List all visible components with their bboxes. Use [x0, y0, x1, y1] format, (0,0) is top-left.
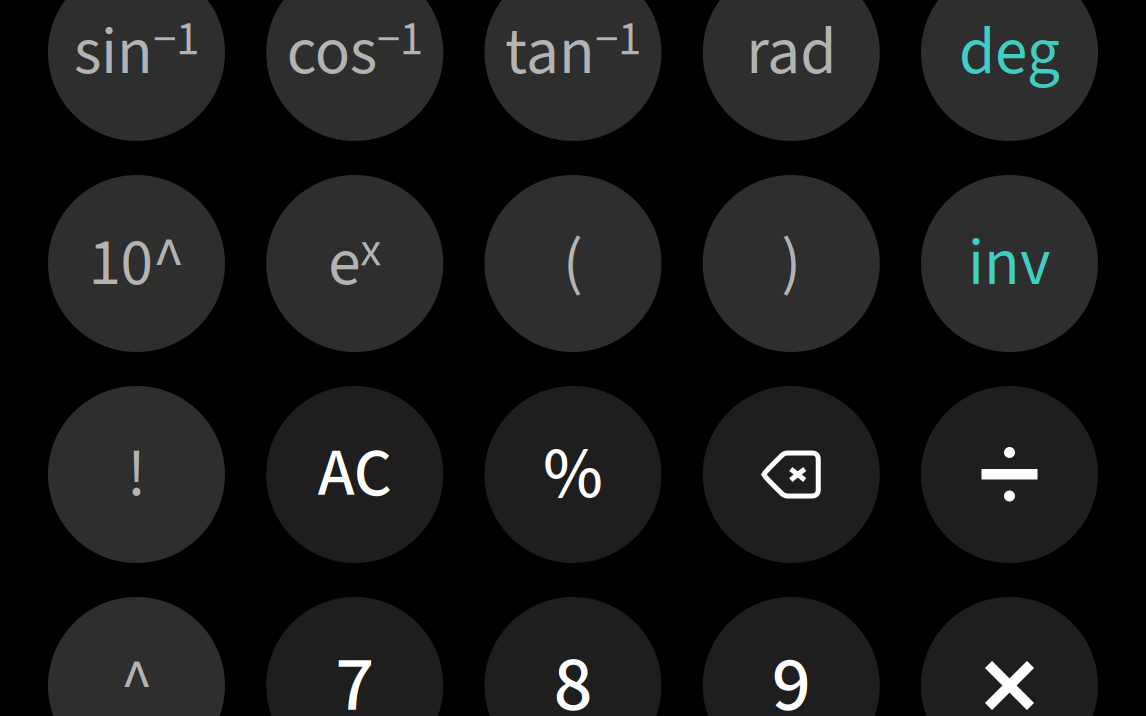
- button[interactable]: delete: [703, 386, 880, 563]
- button[interactable]: all clear: [266, 386, 443, 563]
- staticText: (: [563, 217, 583, 310]
- staticText: 7: [335, 630, 374, 716]
- button[interactable]: factorial: [48, 386, 225, 563]
- staticText: %: [543, 423, 603, 526]
- staticText: cos−1: [287, 7, 423, 98]
- button[interactable]: radians: [703, 0, 880, 141]
- staticText: tan−1: [505, 7, 641, 98]
- button[interactable]: arcsine: [48, 0, 225, 141]
- button[interactable]: inverse: [921, 175, 1098, 352]
- staticText: inv: [968, 217, 1051, 310]
- staticText: deg: [959, 6, 1060, 99]
- button[interactable]: multiply: [921, 597, 1098, 716]
- staticText: sin−1: [74, 7, 199, 98]
- button[interactable]: ten to the power: [48, 175, 225, 352]
- staticText: AC: [318, 427, 392, 522]
- button[interactable]: e to the power x: [266, 175, 443, 352]
- staticText: ex: [328, 218, 381, 309]
- button[interactable]: percent: [484, 386, 661, 563]
- staticText: rad: [746, 6, 836, 99]
- button[interactable]: open parenthesis: [484, 175, 661, 352]
- button[interactable]: divide: [921, 386, 1098, 563]
- button[interactable]: degrees: [921, 0, 1098, 141]
- staticText: !: [127, 428, 146, 521]
- button[interactable]: 9: [703, 597, 880, 716]
- staticText: ^: [120, 639, 152, 716]
- button[interactable]: 7: [266, 597, 443, 716]
- button[interactable]: close parenthesis: [703, 175, 880, 352]
- staticText: ): [781, 217, 801, 310]
- button[interactable]: exponent: [48, 597, 225, 716]
- staticText: 10^: [88, 217, 184, 310]
- staticText: 9: [772, 630, 811, 716]
- button[interactable]: 8: [484, 597, 661, 716]
- button[interactable]: arccosine: [266, 0, 443, 141]
- staticText: 8: [553, 630, 592, 716]
- button[interactable]: arctangent: [484, 0, 661, 141]
